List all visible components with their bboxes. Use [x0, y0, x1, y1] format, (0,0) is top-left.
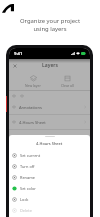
staticText: Annotations [19, 105, 42, 110]
button[interactable]: Rename [12, 172, 87, 183]
button[interactable]: Lock [12, 194, 87, 205]
staticText: Set current [20, 153, 41, 158]
other: App logo [2, 4, 14, 13]
staticText: Delete [20, 208, 32, 213]
button[interactable]: Set color [12, 183, 87, 194]
staticText: 9:41 [14, 51, 23, 57]
button[interactable]: New layer [21, 74, 45, 89]
button[interactable]: Clear all [57, 74, 78, 89]
staticText: Rename [20, 175, 36, 180]
button[interactable]: Turn off [12, 161, 87, 172]
staticText: Set color [20, 186, 36, 191]
button[interactable]: Close [11, 62, 18, 69]
button[interactable]: Delete [12, 205, 87, 216]
staticText: Lock [20, 197, 29, 202]
staticText: 4-Hours Sheet [19, 120, 46, 125]
staticText: Clear all [61, 83, 74, 88]
staticText: Organize your project using layers [0, 17, 100, 33]
button[interactable]: Annotations [12, 100, 87, 114]
staticText: 4-Hours Sheet [36, 141, 63, 146]
staticText: Layers [42, 62, 58, 69]
staticText: New layer [25, 83, 41, 88]
staticText: Turn off [20, 164, 35, 169]
button[interactable]: Set current [12, 150, 87, 161]
button[interactable]: 4-Hours Sheet [12, 115, 87, 129]
